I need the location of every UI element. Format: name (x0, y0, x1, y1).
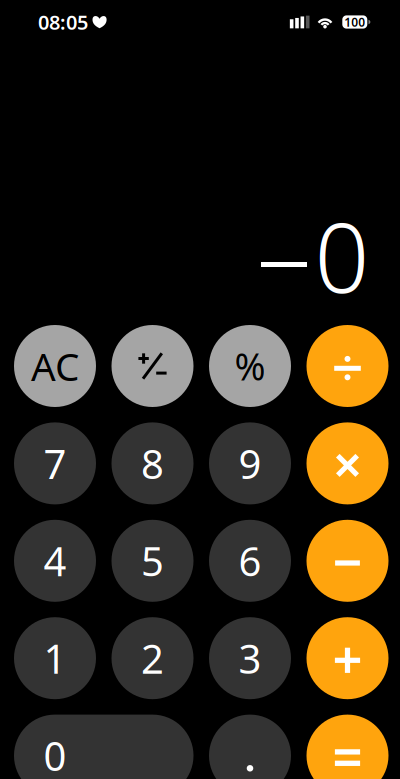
button[interactable]: 5 (111, 520, 193, 602)
staticText: 6 (238, 534, 261, 587)
button[interactable]: Multiply (306, 422, 388, 504)
button[interactable]: 6 (209, 520, 291, 602)
button[interactable]: 7 (14, 422, 96, 504)
staticText: 100 (344, 14, 365, 30)
button[interactable]: 2 (111, 617, 193, 699)
button[interactable]: % (209, 325, 291, 407)
button[interactable]: 3 (209, 617, 291, 699)
staticText: 3 (238, 632, 261, 685)
staticText: AC (31, 340, 79, 392)
button[interactable]: Divide (306, 325, 388, 407)
button[interactable]: 8 (111, 422, 193, 504)
staticText: 4 (43, 534, 66, 587)
staticText: 2 (141, 632, 164, 685)
staticText: 7 (43, 437, 66, 490)
staticText: 0 (314, 192, 369, 319)
button[interactable]: Toggle sign (111, 325, 193, 407)
staticText: 0 (43, 729, 66, 779)
staticText: 08:05 (38, 9, 88, 35)
button[interactable]: 4 (14, 520, 96, 602)
button[interactable]: AC (14, 325, 96, 407)
button[interactable]: 1 (14, 617, 96, 699)
button[interactable]: Subtract (306, 520, 388, 602)
staticText: 9 (238, 437, 261, 490)
button[interactable]: 9 (209, 422, 291, 504)
button[interactable]: Decimal point (209, 715, 291, 779)
button[interactable]: Equals (306, 715, 388, 779)
staticText: % (234, 341, 265, 391)
button[interactable]: 0 (14, 715, 193, 779)
staticText: 8 (141, 437, 164, 490)
button[interactable]: Add (306, 617, 388, 699)
staticText: 5 (141, 534, 164, 587)
staticText: 1 (43, 632, 66, 685)
